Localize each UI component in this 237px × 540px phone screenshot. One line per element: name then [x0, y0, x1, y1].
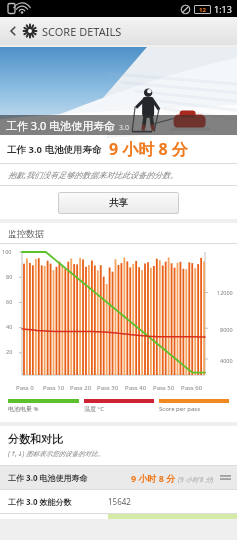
- button[interactable]: Back: [3, 21, 23, 41]
- staticText: 3.0: [119, 123, 129, 133]
- staticText: 分数和对比: [8, 432, 63, 446]
- staticText: 温度 °C: [84, 405, 104, 413]
- staticText: 100: [2, 248, 12, 255]
- staticText: 12: [199, 6, 206, 14]
- staticText: 12000: [217, 289, 233, 296]
- staticText: Pass 40: [125, 384, 147, 392]
- staticText: 80: [6, 273, 13, 280]
- staticText: 15642: [108, 496, 131, 507]
- staticText: 20: [6, 348, 13, 355]
- staticText: Pass 20: [70, 384, 92, 392]
- staticText: 8000: [220, 326, 233, 333]
- staticText: Pass 30: [97, 384, 119, 392]
- staticText: (↑,↓) 图标表示您的设备的对比。: [8, 449, 105, 458]
- other: More options: [220, 472, 231, 483]
- staticText: 抱歉,我们没有足够的数据来对比此设备的分数。: [8, 169, 179, 180]
- staticText: (9 小时 8 分): [178, 475, 214, 484]
- button[interactable]: 共享: [58, 192, 179, 214]
- button[interactable]: 工作 3.0 电池使用寿命: [0, 466, 237, 489]
- staticText: 40: [6, 323, 13, 330]
- staticText: 工作 3.0 电池使用寿命: [7, 143, 102, 156]
- staticText: 9 小时 8 分: [109, 138, 188, 160]
- staticText: Pass 0: [16, 384, 34, 392]
- staticText: Pass 60: [181, 384, 203, 392]
- staticText: SCORE DETAILS: [42, 24, 122, 39]
- staticText: 共享: [109, 197, 128, 209]
- staticText: Score per pass: [159, 405, 201, 413]
- staticText: 1:13: [214, 3, 232, 15]
- other: Silent: [180, 4, 191, 15]
- staticText: Pass 10: [43, 384, 65, 392]
- button[interactable]: 工作 3.0 效能分数: [0, 490, 237, 513]
- staticText: Pass 50: [153, 384, 175, 392]
- staticText: 9 小时 8 分: [131, 472, 176, 484]
- staticText: 4000: [220, 357, 233, 364]
- staticText: 工作 3.0 效能分数: [8, 496, 72, 507]
- staticText: 工作 3.0 电池使用寿命: [8, 472, 88, 483]
- staticText: 60: [6, 298, 13, 305]
- staticText: 电池电量 %: [8, 405, 39, 413]
- staticText: 监控数据: [8, 228, 44, 239]
- staticText: 工作 3.0 电池使用寿命: [6, 118, 116, 133]
